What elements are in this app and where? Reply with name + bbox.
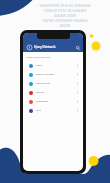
button[interactable]: GoPay Customer [23, 70, 83, 79]
staticText: Daftar Jasa Elektronik [26, 55, 51, 58]
button[interactable]: OVO [23, 106, 83, 115]
staticText: GoPay Customer [36, 73, 76, 76]
staticText: Ujung Elektronik [34, 45, 75, 49]
staticText: OVO [36, 109, 76, 112]
staticText: TRANSFER PULSA HINGGA TOKEN PLN DILAMAN … [38, 3, 92, 28]
staticText: GoPay Driver [36, 82, 76, 85]
button[interactable]: Back [26, 44, 32, 50]
staticText: LinkAja [36, 91, 76, 94]
button[interactable]: GoPay Driver [23, 79, 83, 88]
button[interactable]: Search [75, 45, 80, 50]
staticText: ShopeePay [36, 100, 76, 103]
button[interactable]: ShopeePay [23, 97, 83, 106]
button[interactable]: LinkAja [23, 88, 83, 97]
button[interactable]: Dana [23, 61, 83, 70]
staticText: Dana [36, 64, 76, 67]
